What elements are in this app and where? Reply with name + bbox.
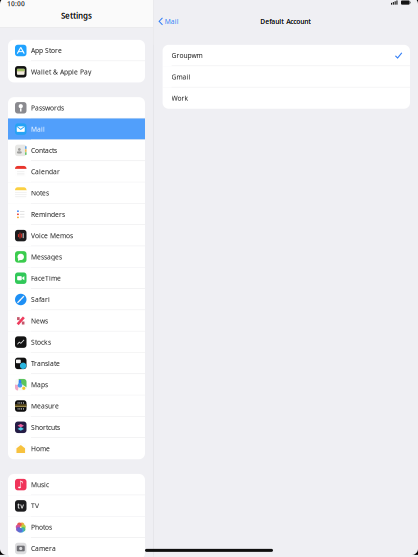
staticText: Safari xyxy=(31,295,50,304)
staticText: Shortcuts xyxy=(31,423,60,432)
button[interactable]: Safari xyxy=(8,289,145,310)
staticText: Passwords xyxy=(31,103,64,112)
staticText: FaceTime xyxy=(31,274,61,283)
button[interactable]: News xyxy=(8,310,145,331)
button[interactable]: Passwords xyxy=(8,97,145,118)
staticText: App Store xyxy=(31,46,62,55)
staticText: Default Account xyxy=(260,17,311,26)
button[interactable]: Reminders xyxy=(8,204,145,225)
staticText: Translate xyxy=(31,359,60,368)
staticText: Music xyxy=(31,480,49,489)
button[interactable]: Voice Memos xyxy=(8,225,145,246)
button[interactable]: Notes xyxy=(8,182,145,204)
staticText: Gmail xyxy=(172,72,191,81)
staticText: ♪ xyxy=(17,478,24,491)
button[interactable]: Calendar xyxy=(8,161,145,182)
button[interactable]: Shortcuts xyxy=(8,417,145,438)
staticText: Notes xyxy=(31,189,49,197)
staticText: Reminders xyxy=(31,210,65,219)
staticText: Work xyxy=(172,94,189,103)
button[interactable]: App Store xyxy=(8,40,145,61)
staticText: Groupwm xyxy=(172,51,203,60)
staticText: Mail xyxy=(165,17,179,26)
button[interactable]: Stocks xyxy=(8,331,145,353)
staticText: Photos xyxy=(31,523,52,532)
button[interactable]: ♪ xyxy=(8,474,145,495)
button[interactable]: Gmail xyxy=(163,66,410,87)
button[interactable]: tv xyxy=(8,495,145,517)
button[interactable]: Translate xyxy=(8,353,145,374)
staticText: Maps xyxy=(31,380,48,389)
button[interactable]: Work xyxy=(163,87,410,109)
staticText: Messages xyxy=(31,252,62,261)
staticText: Mail xyxy=(31,125,45,134)
button[interactable]: Home xyxy=(8,438,145,459)
staticText: Voice Memos xyxy=(31,231,73,240)
button[interactable]: Wallet & Apple Pay xyxy=(8,61,145,82)
button[interactable]: Measure xyxy=(8,395,145,417)
button[interactable]: Camera xyxy=(8,538,145,557)
button[interactable]: Contacts xyxy=(8,140,145,161)
button[interactable]: Mail xyxy=(8,118,145,140)
staticText: tv xyxy=(17,501,24,510)
button[interactable]: Maps xyxy=(8,374,145,395)
staticText: Contacts xyxy=(31,146,57,155)
staticText: Stocks xyxy=(31,338,51,347)
staticText: 10:00 xyxy=(7,0,25,8)
staticText: News xyxy=(31,316,48,325)
staticText: Settings xyxy=(61,10,92,21)
staticText: Home xyxy=(31,444,50,453)
button[interactable]: Groupwm xyxy=(163,45,410,66)
button[interactable]: FaceTime xyxy=(8,267,145,289)
staticText: Calendar xyxy=(31,167,60,176)
staticText: Wallet & Apple Pay xyxy=(31,67,91,76)
button[interactable]: Mail xyxy=(154,11,179,31)
staticText: Measure xyxy=(31,402,59,410)
staticText: TV xyxy=(31,501,39,510)
button[interactable]: Photos xyxy=(8,517,145,538)
button[interactable]: Messages xyxy=(8,246,145,267)
staticText: Camera xyxy=(31,544,56,553)
